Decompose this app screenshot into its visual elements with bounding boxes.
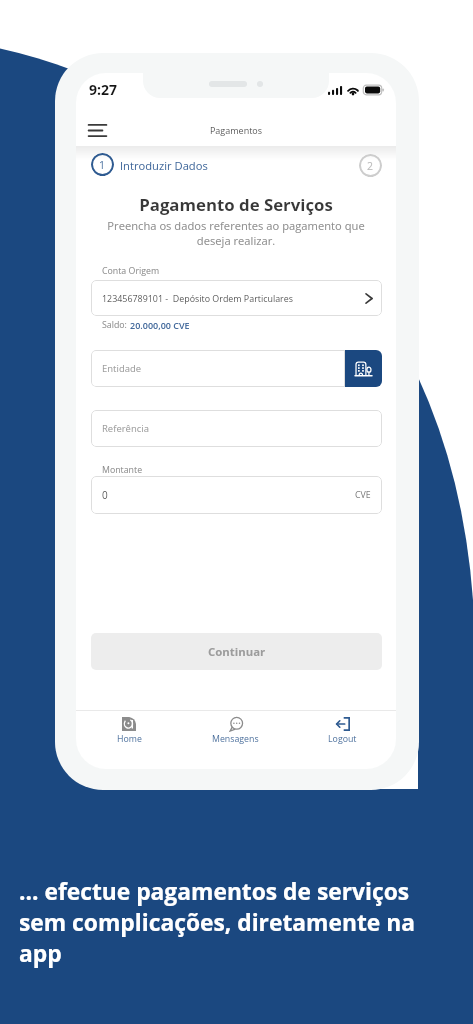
staticText: Home (117, 733, 142, 745)
button[interactable]: Entidade (91, 350, 345, 387)
staticText: Pagamentos (76, 124, 396, 136)
button[interactable]: Mensagens (182, 711, 289, 769)
staticText: Mensagens (212, 733, 259, 745)
button[interactable]: Continuar (91, 633, 382, 670)
staticText: Entidade (102, 362, 142, 375)
staticText: Referência (102, 422, 149, 435)
button[interactable]: Home (76, 711, 182, 769)
button[interactable]: Menu (77, 110, 117, 150)
staticText: Continuar (208, 644, 266, 660)
button[interactable]: 1 (91, 153, 114, 176)
button[interactable]: Introduzir Dados (120, 158, 208, 173)
staticText: Logout (328, 733, 357, 745)
staticText: Preencha os dados referentes ao pagament… (102, 218, 370, 248)
staticText: 20.000,00 CVE (130, 319, 190, 331)
button[interactable]: Escolher entidade (345, 350, 382, 387)
staticText: Pagamento de Serviços (76, 193, 396, 216)
staticText: CVE (355, 489, 371, 501)
staticText: 1 (99, 158, 106, 172)
staticText: Montante (102, 464, 143, 476)
staticText: 2 (367, 159, 374, 173)
button[interactable]: 2 (359, 154, 382, 177)
staticText: 123456789101 - Depósito Ordem Particular… (102, 292, 293, 304)
staticText: Saldo: (102, 319, 130, 331)
staticText: 9:27 (89, 80, 118, 99)
button[interactable]: 0 (91, 476, 382, 514)
staticText: ... efectue pagamentos de serviços sem c… (19, 876, 429, 969)
staticText: 0 (102, 488, 108, 502)
button[interactable]: Logout (289, 711, 396, 769)
button[interactable]: 123456789101 - Depósito Ordem Particular… (91, 280, 382, 316)
staticText: Conta Origem (102, 265, 160, 277)
button[interactable]: Referência (91, 410, 382, 447)
